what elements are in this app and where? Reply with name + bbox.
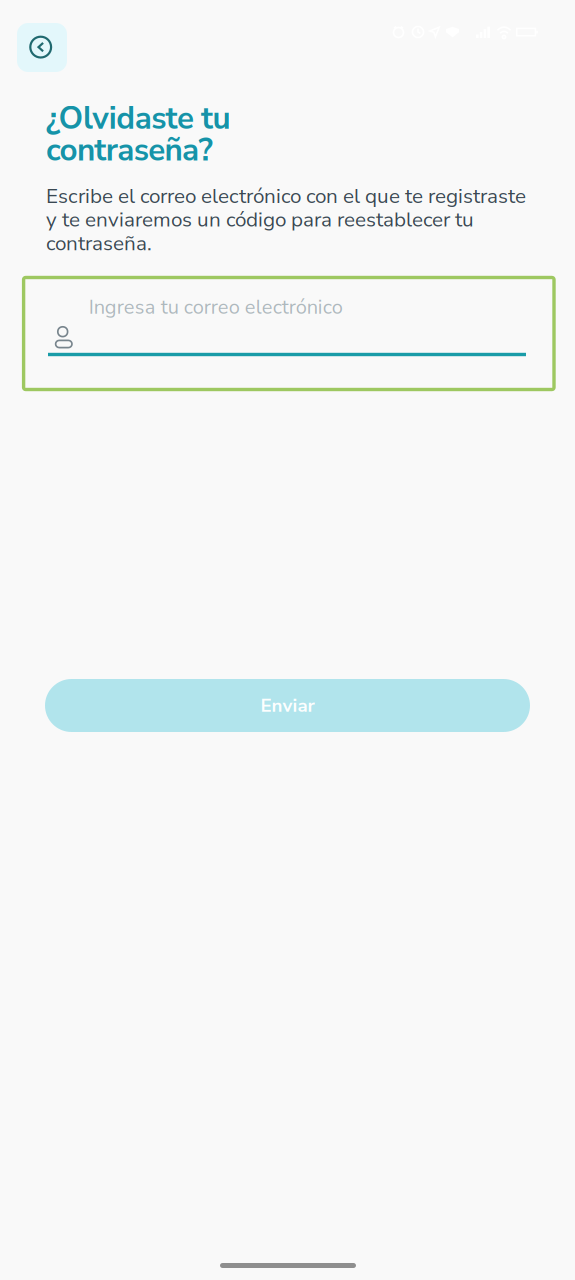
staticText: contraseña? <box>46 129 212 171</box>
staticText: 9:41 <box>23 22 57 46</box>
button[interactable]: Enviar <box>45 679 530 732</box>
staticText: Ingresa tu correo electrónico <box>89 293 343 321</box>
button[interactable]: Back <box>17 23 67 72</box>
staticText: Enviar <box>260 693 314 718</box>
staticText: ¿Olvidaste tu <box>46 97 230 140</box>
staticText: Escribe el correo electrónico con el que… <box>46 182 526 258</box>
